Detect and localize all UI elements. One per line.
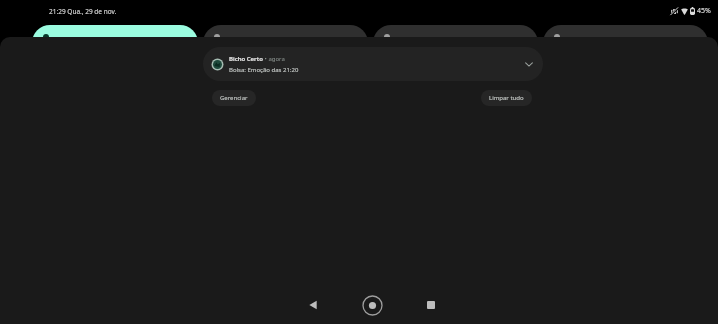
staticText: Bicho Certo (229, 55, 263, 63)
button[interactable]: Gerenciar (212, 90, 256, 106)
staticText: Limpar tudo (489, 94, 524, 102)
button[interactable]: Configuração rápida (32, 25, 198, 61)
staticText: 45% (697, 6, 711, 16)
staticText: 21:29 Qua., 29 de nov. (49, 7, 117, 16)
button[interactable]: Expandir notificação (521, 56, 537, 72)
button[interactable]: Voltar (296, 288, 330, 322)
button[interactable]: Configuração rápida (543, 25, 708, 61)
button[interactable]: Recentes (414, 288, 448, 322)
staticText: • agora (263, 55, 285, 63)
button[interactable]: Limpar tudo (481, 90, 532, 106)
staticText: Gerenciar (220, 94, 248, 102)
button[interactable]: Configuração rápida (373, 25, 538, 61)
button[interactable]: Configuração rápida (203, 25, 368, 61)
button[interactable]: Bicho Certo (203, 47, 543, 81)
staticText: Bolsa: Emoção das 21:20 (229, 66, 299, 74)
button[interactable]: Início (355, 288, 389, 322)
